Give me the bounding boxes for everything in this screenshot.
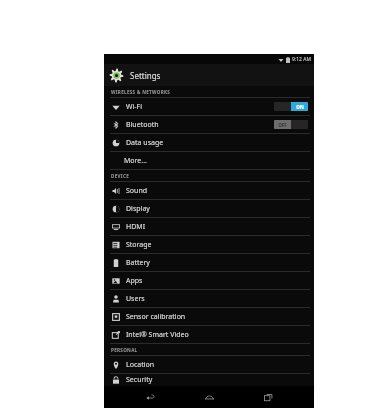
- staticText: DEVICE: [111, 173, 130, 179]
- staticText: 9:12 AM: [292, 56, 311, 63]
- staticText: More...: [124, 156, 147, 166]
- staticText: Bluetooth: [126, 120, 159, 130]
- staticText: WIRELESS & NETWORKS: [111, 89, 171, 95]
- button[interactable]: Wi-Fi: [104, 98, 314, 115]
- button[interactable]: Intel® Smart Video: [104, 326, 314, 343]
- button[interactable]: Location: [104, 356, 314, 373]
- staticText: PERSONAL: [111, 347, 138, 353]
- staticText: Display: [126, 204, 150, 214]
- staticText: Storage: [126, 240, 152, 250]
- staticText: Security: [126, 375, 153, 385]
- button[interactable]: Switch on: [274, 102, 308, 111]
- staticText: Users: [126, 294, 145, 304]
- button[interactable]: Security: [104, 374, 314, 386]
- staticText: HDMI: [126, 222, 146, 232]
- button[interactable]: Sound: [104, 182, 314, 199]
- button[interactable]: Sensor calibration: [104, 308, 314, 325]
- button[interactable]: Storage: [104, 236, 314, 253]
- button[interactable]: Home: [196, 386, 222, 408]
- staticText: Location: [126, 360, 155, 370]
- staticText: Apps: [126, 276, 143, 286]
- button[interactable]: Recent apps: [255, 386, 281, 408]
- staticText: Battery: [126, 258, 150, 268]
- button[interactable]: Switch off: [274, 120, 308, 129]
- staticText: OFF: [278, 122, 287, 128]
- button[interactable]: Bluetooth: [104, 116, 314, 133]
- staticText: Intel® Smart Video: [126, 330, 189, 340]
- button[interactable]: More...: [104, 152, 314, 169]
- staticText: Wi-Fi: [126, 102, 143, 112]
- button[interactable]: Data usage: [104, 134, 314, 151]
- button[interactable]: HDMI: [104, 218, 314, 235]
- staticText: Sound: [126, 186, 148, 196]
- button[interactable]: Settings: [104, 64, 314, 86]
- button[interactable]: Apps: [104, 272, 314, 289]
- staticText: Settings: [130, 70, 161, 81]
- staticText: ON: [296, 104, 304, 110]
- button[interactable]: Battery: [104, 254, 314, 271]
- staticText: Sensor calibration: [126, 312, 186, 322]
- staticText: Data usage: [126, 138, 164, 148]
- button[interactable]: Users: [104, 290, 314, 307]
- button[interactable]: Back: [137, 386, 163, 408]
- button[interactable]: Display: [104, 200, 314, 217]
